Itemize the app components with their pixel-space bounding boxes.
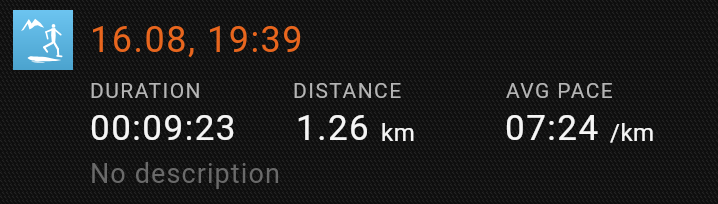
staticText: 00:09:23 <box>90 108 237 149</box>
staticText: No description <box>90 158 281 190</box>
staticText: km <box>381 119 416 147</box>
button[interactable]: Trail running activity <box>0 0 718 204</box>
staticText: 1.26 <box>296 108 371 149</box>
staticText: DISTANCE <box>293 79 403 104</box>
staticText: 07:24 <box>505 108 600 149</box>
staticText: AVG PACE <box>506 79 615 104</box>
button[interactable]: Trail running activity <box>13 10 73 70</box>
staticText: DURATION <box>90 79 202 104</box>
staticText: 16.08, 19:39 <box>90 19 305 61</box>
staticText: /km <box>610 119 655 147</box>
